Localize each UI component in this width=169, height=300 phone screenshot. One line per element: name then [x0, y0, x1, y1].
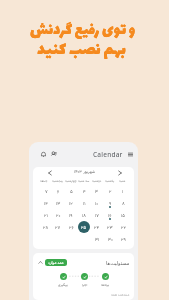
- staticText: ۱: [122, 188, 124, 195]
- staticText: مشاهده همه: [111, 293, 130, 298]
- button[interactable]: ۱۹: [65, 209, 77, 221]
- button[interactable]: ۳: [91, 185, 103, 197]
- staticText: سه شنبه: [78, 179, 90, 184]
- button[interactable]: [60, 273, 67, 280]
- staticText: و توی رفیع گردنش: [30, 17, 135, 44]
- button[interactable]: ۱۳: [52, 197, 64, 209]
- button[interactable]: [81, 273, 88, 280]
- staticText: جمعه: [40, 179, 48, 184]
- staticText: ۶: [57, 188, 60, 195]
- staticText: ۱۴: [44, 200, 48, 207]
- button[interactable]: ۱۰: [91, 197, 103, 209]
- button[interactable]: ۷: [40, 185, 52, 197]
- staticText: چهارشنبه: [65, 179, 77, 184]
- staticText: ۲۴: [94, 224, 100, 231]
- staticText: ۲۰: [56, 212, 61, 219]
- button[interactable]: ۲۴: [91, 221, 103, 233]
- button[interactable]: ۱۲: [65, 197, 77, 209]
- button[interactable]: ۱۶: [104, 209, 116, 221]
- staticText: ۱۱: [83, 200, 86, 207]
- button[interactable]: ۲۵: [78, 221, 90, 233]
- staticText: ۱۳: [56, 200, 61, 207]
- button[interactable]: Next month: [116, 169, 124, 177]
- staticText: پیگیری: [58, 282, 68, 288]
- staticText: همه موارد: [48, 260, 64, 265]
- button[interactable]: ۱: [117, 185, 129, 197]
- button[interactable]: ۲۶: [65, 221, 77, 233]
- staticText: ۴: [83, 188, 86, 195]
- button[interactable]: ۶: [52, 185, 64, 197]
- button[interactable]: ۲: [104, 185, 116, 197]
- staticText: ۲۳: [107, 224, 113, 231]
- button[interactable]: ۱۴: [40, 197, 52, 209]
- staticText: ۲۷: [55, 224, 61, 231]
- staticText: اجرا: [82, 282, 88, 288]
- button[interactable]: [102, 273, 109, 280]
- button[interactable]: همه موارد: [45, 259, 67, 266]
- button[interactable]: Previous month: [46, 169, 54, 177]
- button[interactable]: ۲۷: [52, 221, 64, 233]
- staticText: دوشنبه: [92, 179, 102, 184]
- button[interactable]: ۲۹: [117, 233, 129, 245]
- staticText: ۸: [122, 200, 125, 207]
- staticText: ۱۸: [82, 212, 87, 219]
- staticText: بهم نصب کنید: [37, 36, 126, 64]
- staticText: ۲۹: [121, 236, 126, 243]
- staticText: ۳۰: [108, 236, 113, 243]
- button[interactable]: ۲۱: [40, 209, 52, 221]
- staticText: ۱۹: [69, 212, 73, 219]
- staticText: یکشنبه: [105, 179, 115, 184]
- button[interactable]: ۲۰: [52, 209, 64, 221]
- button[interactable]: ۱۸: [78, 209, 90, 221]
- staticText: ۳۱: [95, 236, 100, 243]
- staticText: ۱۰: [95, 200, 99, 207]
- button[interactable]: ۲۳: [104, 221, 116, 233]
- staticText: ۲۵: [81, 224, 87, 231]
- staticText: ۱۷: [95, 212, 100, 219]
- staticText: ۷: [45, 188, 48, 195]
- button[interactable]: Notifications: [39, 150, 48, 159]
- staticText: شهریور ۱۴۰۳: [74, 169, 96, 176]
- staticText: ۲۸: [43, 224, 49, 231]
- button[interactable]: ۹: [104, 197, 116, 209]
- button[interactable]: ۱۵: [117, 209, 129, 221]
- button[interactable]: ۲۲: [117, 221, 129, 233]
- button[interactable]: ۸: [117, 197, 129, 209]
- button[interactable]: ۴: [78, 185, 90, 197]
- button[interactable]: ۲۸: [40, 221, 52, 233]
- staticText: ۲۱: [44, 212, 48, 219]
- staticText: برنامه: [101, 282, 109, 288]
- button[interactable]: ۳۰: [104, 233, 116, 245]
- button[interactable]: Menu: [126, 150, 135, 159]
- staticText: ۱۶: [108, 212, 112, 219]
- staticText: ۱۲: [69, 200, 73, 207]
- staticText: و توی رفیع گردنش: [30, 17, 135, 44]
- staticText: شنبه: [119, 179, 126, 184]
- staticText: ۵: [70, 188, 73, 195]
- staticText: ۲: [109, 188, 112, 195]
- button[interactable]: ۵: [65, 185, 77, 197]
- button[interactable]: Profile: [49, 150, 58, 159]
- button[interactable]: ۱۷: [91, 209, 103, 221]
- staticText: پنجشنبه: [52, 179, 63, 184]
- staticText: ۱۵: [121, 212, 126, 219]
- staticText: ۲۲: [121, 224, 126, 231]
- staticText: مسئولیت‌ها: [106, 260, 130, 266]
- button[interactable]: ۱۱: [78, 197, 90, 209]
- staticText: ۲۶: [69, 224, 74, 231]
- staticText: بهم نصب کنید: [37, 36, 126, 64]
- button[interactable]: Collapse: [37, 259, 44, 266]
- staticText: ۳: [95, 188, 99, 195]
- staticText: Calendar: [93, 150, 123, 159]
- staticText: ۹: [109, 200, 112, 207]
- button[interactable]: ۳۱: [91, 233, 103, 245]
